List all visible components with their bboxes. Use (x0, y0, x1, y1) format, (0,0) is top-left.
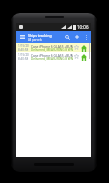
button[interactable]: Delivered (80, 53, 88, 61)
staticText: All parcels (28, 38, 42, 42)
button[interactable]: 1/15/2015 (16, 43, 91, 52)
staticText: 8:40:58 PM (18, 48, 29, 52)
button[interactable]: Add parcel (72, 31, 82, 43)
button[interactable]: Favourite (73, 53, 80, 60)
staticText: Ships tracking (28, 33, 52, 38)
staticText: Case iPhone 6 GLASS +BUMPER (31, 53, 73, 57)
staticText: Delivered, MEASURING 8 WN 283 (31, 48, 73, 52)
staticText: 1/15/2015 (18, 53, 29, 57)
staticText: 1/15/2015 (18, 44, 29, 48)
staticText: Delivered, MEASURING 8 WN 283 (31, 57, 73, 61)
button[interactable]: More options (82, 31, 90, 43)
staticText: 8:40:58 PM (18, 57, 29, 61)
button[interactable]: Open navigation drawer (16, 31, 28, 43)
button[interactable]: Favourite (73, 44, 80, 51)
staticText: Case iPhone 6 GLASS +BUMPER (31, 44, 73, 48)
button[interactable]: 1/15/2015 (16, 52, 91, 61)
button[interactable]: Search (62, 31, 72, 43)
staticText: 10:06 (77, 24, 89, 30)
button[interactable]: Delivered (80, 44, 88, 52)
